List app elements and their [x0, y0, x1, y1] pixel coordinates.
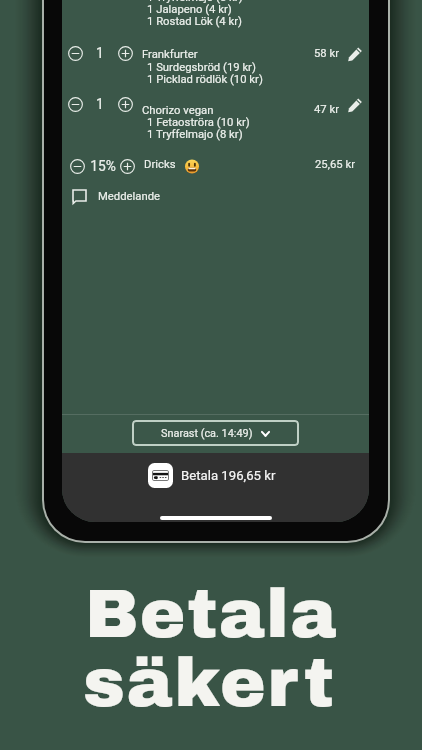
button[interactable]: Increase: [118, 97, 133, 112]
staticText: 1 Jalapeno (4 kr): [147, 3, 232, 16]
button[interactable]: Snarast (ca. 14:49): [132, 420, 299, 446]
staticText: Meddelande: [98, 190, 161, 203]
staticText: 25,65 kr: [315, 158, 355, 171]
staticText: Snarast (ca. 14:49): [161, 427, 253, 440]
button[interactable]: Betala 196,65 kr: [62, 453, 369, 522]
staticText: 1: [96, 96, 104, 112]
staticText: 1 Tryffelmajo (8 kr): [147, 128, 243, 141]
staticText: Betala 196,65 kr: [181, 468, 276, 483]
button[interactable]: Increase: [118, 46, 133, 61]
staticText: 1 Rostad Lök (4 kr): [147, 15, 242, 28]
staticText: 15%: [90, 158, 116, 174]
staticText: 1 Fetaoströra (10 kr): [147, 116, 250, 129]
staticText: säkert: [83, 646, 336, 721]
staticText: Dricks: [144, 158, 176, 171]
staticText: 1 Picklad rödlök (10 kr): [147, 73, 263, 86]
staticText: Frankfurter: [142, 48, 198, 61]
staticText: 47 kr: [314, 103, 340, 116]
button[interactable]: Increase: [120, 159, 135, 174]
button[interactable]: Decrease: [68, 97, 83, 112]
staticText: Betala: [85, 577, 338, 652]
staticText: 58 kr: [314, 47, 340, 60]
button[interactable]: Decrease: [70, 159, 85, 174]
button[interactable]: Edit Frankfurter: [347, 46, 363, 62]
staticText: 1 Surdegsbröd (19 kr): [147, 61, 256, 74]
button[interactable]: Edit Chorizo vegan: [347, 97, 363, 113]
staticText: 1 Tryffelmajo (8 kr): [147, 0, 243, 4]
staticText: 1: [96, 45, 104, 61]
button[interactable]: Decrease: [68, 46, 83, 61]
staticText: Chorizo vegan: [142, 104, 214, 117]
button[interactable]: Meddelande: [67, 183, 167, 207]
